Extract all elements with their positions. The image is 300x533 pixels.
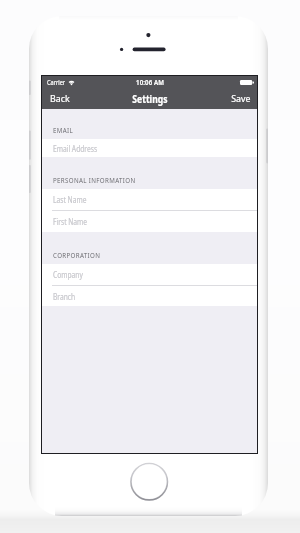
button[interactable]: Branch [42, 286, 257, 306]
staticText: 10:06 AM [136, 78, 164, 87]
staticText: Carrier [47, 78, 66, 86]
staticText: Back [50, 92, 70, 105]
staticText: Branch [53, 291, 76, 302]
staticText: EMAIL [53, 126, 74, 134]
button[interactable]: Email Address [42, 139, 257, 157]
button[interactable]: Save [221, 89, 257, 108]
staticText: First Name [53, 216, 87, 227]
staticText: Company [53, 269, 83, 280]
staticText: Save [231, 92, 251, 105]
button[interactable]: Last Name [42, 189, 257, 210]
staticText: Email Address [53, 143, 98, 154]
button[interactable]: First Name [42, 211, 257, 232]
button[interactable]: Company [42, 264, 257, 285]
staticText: Settings [132, 92, 168, 106]
other: Wi-Fi signal [68, 80, 75, 85]
button[interactable]: Back [42, 89, 80, 108]
staticText: CORPORATION [53, 251, 101, 259]
other: Battery [240, 80, 254, 85]
staticText: Last Name [53, 194, 86, 205]
staticText: PERSONAL INFORMATION [53, 176, 136, 184]
